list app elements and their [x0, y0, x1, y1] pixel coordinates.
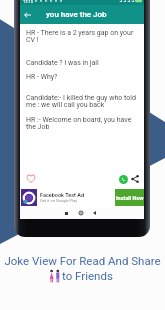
button[interactable]: Home	[76, 208, 86, 218]
button[interactable]: Back	[89, 208, 99, 218]
staticText: HR - Why?	[26, 73, 139, 81]
staticText: Candidate:- I killed the guy who told me…	[26, 94, 139, 109]
staticText: Install Now	[116, 195, 144, 201]
button[interactable]: Back	[20, 5, 35, 24]
staticText: Candidate ? I was in jail	[26, 59, 139, 67]
staticText: HR :- Welcome on board, you have the Job	[26, 116, 139, 131]
staticText: you have the Job	[46, 10, 107, 19]
button[interactable]: Facebook Test Ad	[21, 189, 144, 206]
button[interactable]: Share	[128, 172, 142, 186]
button[interactable]: Recents	[61, 208, 71, 218]
staticText: HR - There is a 2 years gap on your CV !	[26, 29, 139, 44]
button[interactable]: Like	[23, 170, 39, 186]
staticText: 17:15	[23, 0, 33, 4]
staticText: Get it on Google Play	[40, 198, 78, 203]
staticText: Joke View For Read And Share	[4, 254, 161, 267]
button[interactable]: Share on WhatsApp	[116, 172, 130, 186]
staticText: Facebook Test Ad	[40, 192, 84, 198]
staticText: to Friends	[62, 269, 113, 282]
button[interactable]: Install Now	[115, 189, 144, 206]
